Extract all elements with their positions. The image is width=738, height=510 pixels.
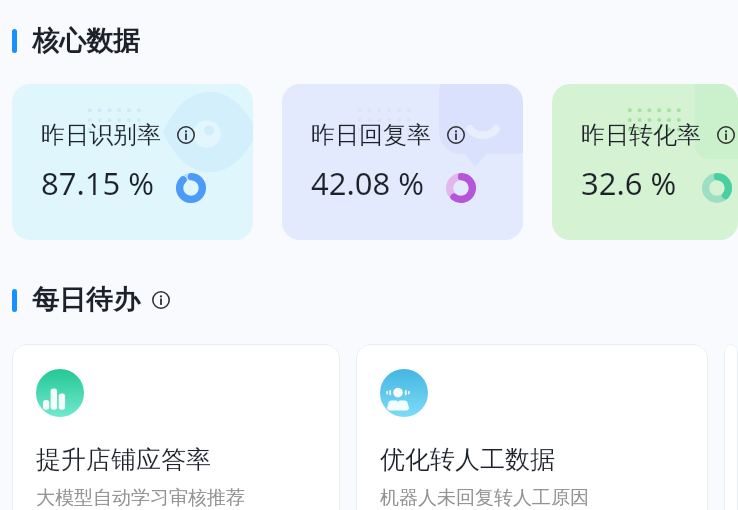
staticText: 昨日转化率	[581, 120, 701, 150]
staticText: 87.15 %	[41, 162, 155, 204]
staticText: 42.08 %	[311, 162, 425, 204]
button[interactable]: 昨日回复率	[282, 84, 523, 240]
staticText: 32.6 %	[581, 162, 677, 204]
staticText: 机器人未回复转人工原因	[380, 486, 589, 510]
staticText: 提升店铺应答率	[36, 444, 211, 475]
button[interactable]: 昨日识别率	[12, 84, 253, 240]
button[interactable]: Info	[151, 290, 171, 310]
staticText: 优化转人工数据	[380, 444, 555, 475]
button[interactable]: 提升店铺应答率	[12, 344, 340, 510]
button[interactable]: 客服质检	[724, 344, 738, 510]
staticText: 每日待办	[32, 283, 140, 317]
button[interactable]: 优化转人工数据	[356, 344, 708, 510]
staticText: 核心数据	[32, 24, 140, 58]
staticText: 大模型自动学习审核推荐	[36, 486, 245, 510]
staticText: 昨日回复率	[311, 120, 431, 150]
button[interactable]: 昨日转化率	[552, 84, 738, 240]
staticText: 昨日识别率	[41, 120, 161, 150]
